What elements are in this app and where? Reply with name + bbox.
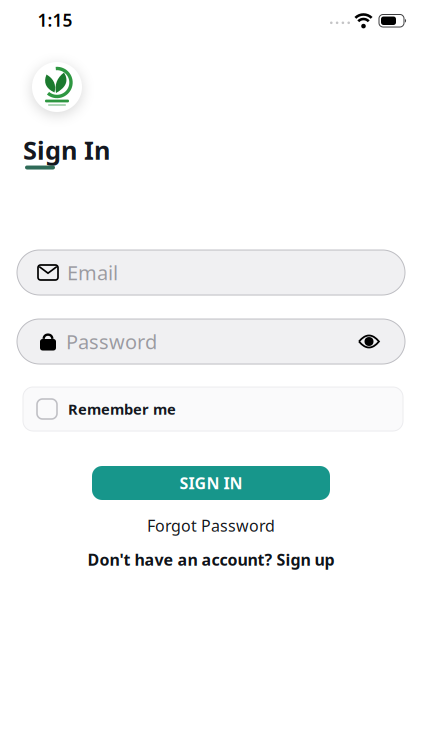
- staticText: Remember me: [68, 399, 176, 419]
- button[interactable]: Forgot Password: [147, 515, 275, 536]
- staticText: Sign In: [23, 133, 110, 167]
- staticText: Forgot Password: [147, 515, 275, 536]
- staticText: Don't have an account? Sign up: [87, 549, 334, 570]
- button[interactable]: Email: [17, 250, 405, 295]
- staticText: SIGN IN: [179, 472, 242, 494]
- button[interactable]: Remember me: [23, 387, 403, 431]
- button[interactable]: Don't have an account? Sign up: [87, 549, 334, 570]
- button[interactable]: SIGN IN: [92, 466, 330, 500]
- staticText: Email: [67, 259, 118, 286]
- staticText: Password: [66, 328, 157, 355]
- staticText: 1:15: [37, 8, 72, 31]
- button[interactable]: Show password: [352, 329, 386, 354]
- button[interactable]: Password: [17, 319, 405, 364]
